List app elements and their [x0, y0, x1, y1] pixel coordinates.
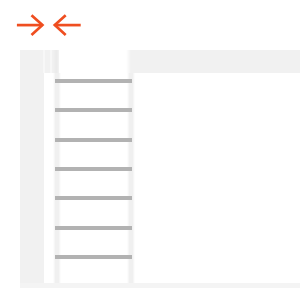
- button[interactable]: Collapse left: [52, 11, 84, 39]
- button[interactable]: Expand right: [15, 11, 45, 39]
